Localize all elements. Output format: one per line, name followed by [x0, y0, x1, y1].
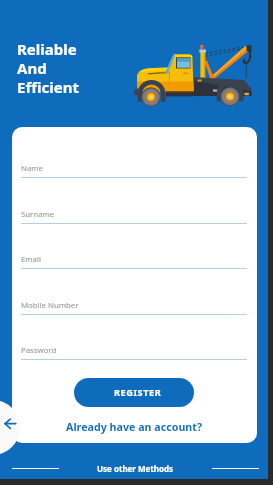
- staticText: Efficient: [17, 77, 79, 97]
- staticText: Name: [21, 163, 43, 174]
- button[interactable]: Back: [0, 400, 20, 455]
- staticText: And: [17, 58, 47, 78]
- staticText: Email: [21, 254, 42, 265]
- staticText: Password: [21, 345, 57, 356]
- button[interactable]: Surname: [21, 209, 247, 224]
- staticText: Use other Methods: [97, 463, 174, 474]
- button[interactable]: REGISTER: [74, 378, 194, 407]
- button[interactable]: Email: [21, 254, 247, 269]
- staticText: Reliable: [17, 39, 77, 59]
- staticText: Surname: [21, 209, 55, 220]
- button[interactable]: Mobile Number: [21, 300, 247, 315]
- button[interactable]: Already have an account?: [12, 417, 257, 437]
- button[interactable]: Password: [21, 345, 247, 360]
- staticText: Already have an account?: [66, 420, 203, 435]
- staticText: REGISTER: [114, 386, 162, 399]
- staticText: Mobile Number: [21, 300, 79, 311]
- button[interactable]: Use other Methods: [0, 458, 268, 479]
- button[interactable]: Name: [21, 163, 247, 178]
